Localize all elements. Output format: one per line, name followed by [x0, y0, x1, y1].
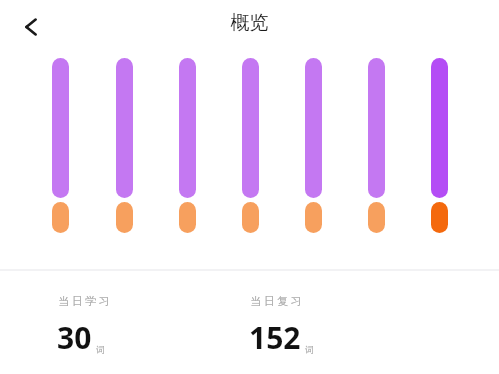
button[interactable]: 04-06 — [345, 58, 408, 238]
button[interactable]: 04-03 — [156, 58, 219, 238]
button[interactable]: 04-01 — [28, 58, 92, 238]
staticText: 30 — [57, 317, 92, 358]
button[interactable]: 当日学习 — [57, 294, 111, 358]
staticText: 词 — [305, 344, 314, 355]
button[interactable]: 当日复习 — [249, 294, 314, 358]
staticText: 152 — [249, 317, 301, 358]
staticText: 词 — [96, 344, 105, 355]
button[interactable]: 04-05 — [282, 58, 345, 238]
staticText: 当日学习 — [57, 294, 111, 308]
staticText: 概览 — [0, 11, 499, 35]
button[interactable]: Back — [14, 8, 52, 46]
staticText: 当日复习 — [249, 294, 303, 308]
button[interactable]: 今日 — [408, 58, 471, 238]
button[interactable]: 04-02 — [92, 58, 156, 238]
button[interactable]: 04-04 — [219, 58, 282, 238]
